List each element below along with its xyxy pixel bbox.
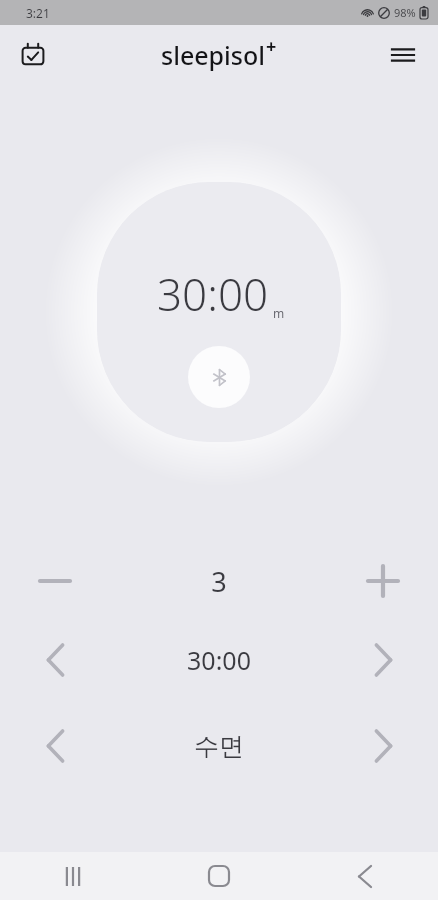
staticText: 3	[211, 563, 227, 600]
staticText: m	[273, 305, 285, 321]
staticText: 3:21	[26, 5, 50, 21]
button[interactable]: Increase	[328, 545, 438, 617]
staticText: +	[266, 34, 277, 59]
staticText: 30:00	[157, 264, 269, 324]
staticText: sleepisol	[161, 38, 266, 72]
staticText: 수면	[194, 731, 244, 762]
button[interactable]: Duration previous	[0, 617, 110, 703]
button[interactable]: Duration next	[328, 617, 438, 703]
button[interactable]: Schedule	[10, 32, 56, 78]
button[interactable]: Mode next	[328, 703, 438, 789]
button[interactable]: Back	[292, 852, 438, 900]
staticText: 30:00	[187, 643, 251, 677]
button[interactable]: Recent apps	[0, 852, 146, 900]
button[interactable]: Menu	[380, 32, 426, 78]
staticText: 98%	[394, 5, 416, 20]
button[interactable]: Home	[146, 852, 292, 900]
button[interactable]: Bluetooth	[188, 346, 250, 408]
button[interactable]: Decrease	[0, 545, 110, 617]
button[interactable]: Mode previous	[0, 703, 110, 789]
button[interactable]: 30:00	[97, 182, 341, 442]
